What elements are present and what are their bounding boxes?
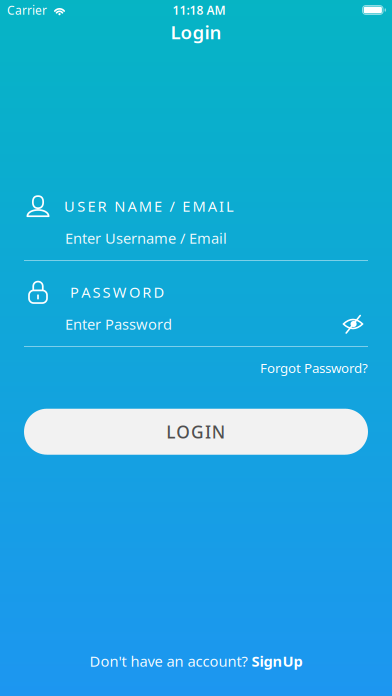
staticText: R — [98, 196, 107, 216]
staticText: Enter Username / Email — [65, 228, 227, 248]
staticText: Login — [170, 20, 221, 44]
staticText: E — [154, 196, 162, 216]
button[interactable]: Don't have an account? — [65, 646, 326, 676]
staticText: E — [182, 196, 190, 216]
staticText: N — [212, 420, 225, 443]
staticText: S — [103, 282, 111, 302]
staticText: M — [139, 196, 152, 216]
staticText: R — [142, 282, 151, 302]
staticText: Don't have an account? — [89, 651, 247, 671]
staticText: / — [170, 196, 175, 216]
staticText: O — [176, 420, 190, 443]
staticText: G — [191, 420, 204, 443]
staticText: W — [113, 282, 127, 302]
button[interactable]: Forgot Password? — [248, 352, 368, 384]
staticText: 11:18 AM — [172, 2, 225, 18]
staticText: A — [127, 196, 136, 216]
staticText: S — [92, 282, 100, 302]
staticText: D — [153, 282, 164, 302]
staticText: A — [81, 282, 90, 302]
staticText: M — [192, 196, 205, 216]
staticText: Forgot Password? — [260, 359, 368, 377]
staticText: S — [77, 196, 85, 216]
staticText: A — [208, 196, 217, 216]
staticText: P — [70, 282, 79, 302]
staticText: Enter Password — [65, 314, 172, 334]
staticText: L — [166, 420, 175, 443]
staticText: O — [129, 282, 140, 302]
staticText: I — [205, 420, 211, 443]
staticText: I — [219, 196, 224, 216]
staticText: E — [87, 196, 95, 216]
staticText: U — [64, 196, 75, 216]
button[interactable]: Show password — [338, 314, 368, 334]
staticText: N — [114, 196, 125, 216]
staticText: SignUp — [251, 651, 302, 671]
button[interactable]: L — [0, 409, 392, 455]
staticText: Carrier — [7, 2, 47, 18]
staticText: L — [226, 196, 234, 216]
